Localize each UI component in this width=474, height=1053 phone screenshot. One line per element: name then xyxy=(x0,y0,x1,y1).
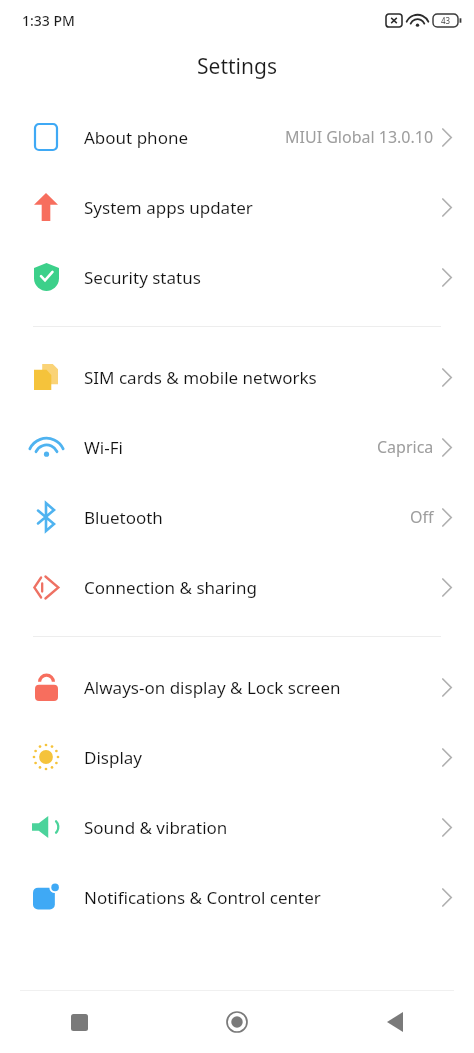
button[interactable]: Bluetooth xyxy=(0,482,474,552)
staticText: Caprica xyxy=(377,436,434,458)
staticText: SIM cards & mobile networks xyxy=(84,366,434,389)
staticText: Security status xyxy=(84,266,434,289)
button[interactable]: Back xyxy=(316,991,474,1053)
staticText: Display xyxy=(84,746,434,769)
button[interactable]: Sound & vibration xyxy=(0,792,474,862)
staticText: Settings xyxy=(197,52,277,81)
button[interactable]: Security status xyxy=(0,242,474,312)
staticText: 1:33 PM xyxy=(22,11,75,30)
staticText: Bluetooth xyxy=(84,506,402,529)
staticText: System apps updater xyxy=(84,196,434,219)
button[interactable]: Wi-Fi xyxy=(0,412,474,482)
staticText: Off xyxy=(410,506,434,528)
button[interactable]: Recents xyxy=(0,991,158,1053)
staticText: Sound & vibration xyxy=(84,816,434,839)
staticText: Notifications & Control center xyxy=(84,886,434,909)
button[interactable]: SIM cards & mobile networks xyxy=(0,342,474,412)
button[interactable]: Notifications & Control center xyxy=(0,862,474,932)
button[interactable]: Connection & sharing xyxy=(0,552,474,622)
staticText: MIUI Global 13.0.10 xyxy=(285,126,434,148)
staticText: Wi-Fi xyxy=(84,436,369,459)
staticText: 43 xyxy=(441,15,451,26)
staticText: Connection & sharing xyxy=(84,576,434,599)
button[interactable]: About phone xyxy=(0,102,474,172)
staticText: About phone xyxy=(84,126,277,149)
button[interactable]: System apps updater xyxy=(0,172,474,242)
button[interactable]: Always-on display & Lock screen xyxy=(0,652,474,722)
button[interactable]: Home xyxy=(158,991,316,1053)
button[interactable]: Display xyxy=(0,722,474,792)
staticText: Always-on display & Lock screen xyxy=(84,676,434,699)
